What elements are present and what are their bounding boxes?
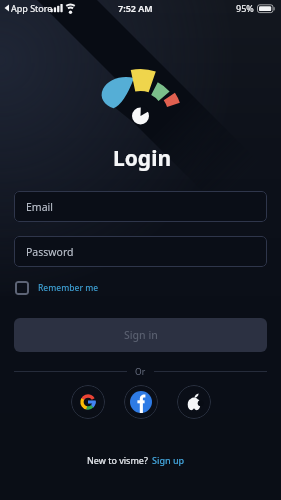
staticText: 95% (236, 2, 254, 14)
staticText: 7:52 AM (118, 2, 153, 14)
staticText: Or (135, 366, 146, 378)
button[interactable] (124, 385, 158, 419)
staticText: Sign in (124, 328, 158, 342)
staticText: Remember me (38, 282, 99, 294)
staticText: Email (26, 200, 53, 214)
staticText: Password (26, 245, 74, 259)
button[interactable]: Sign up (152, 454, 185, 466)
staticText: New to visme? (87, 454, 148, 466)
button[interactable] (71, 385, 105, 419)
staticText: App Store (11, 2, 53, 14)
button[interactable]: Email (14, 191, 267, 222)
button[interactable] (177, 385, 211, 419)
button[interactable]: Password (14, 236, 267, 267)
staticText: Login (113, 144, 172, 173)
button[interactable]: Sign in (14, 318, 267, 352)
button[interactable]: Remember me (15, 281, 99, 295)
